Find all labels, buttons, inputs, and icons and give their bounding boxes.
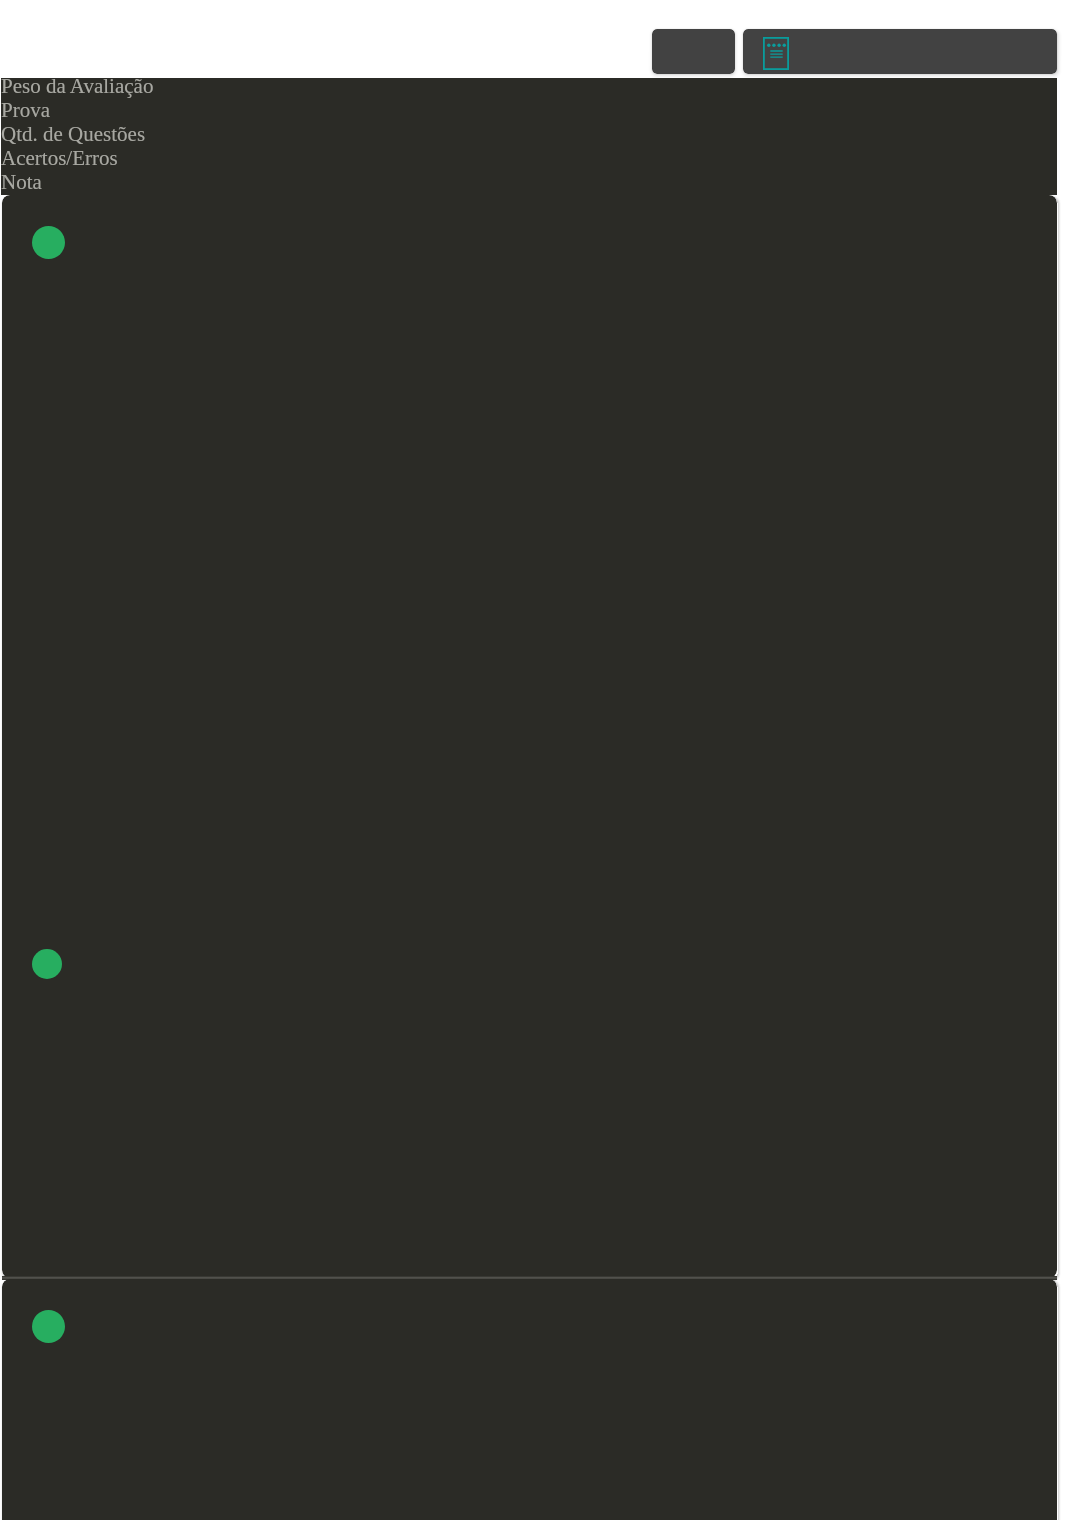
staticText: Prova [1, 98, 50, 122]
staticText: Qtd. de Questões [1, 122, 146, 146]
button[interactable] [2, 195, 1057, 1278]
button[interactable]: Abrir anotações [743, 29, 1057, 74]
staticText: Acertos/Erros [1, 146, 118, 170]
staticText: Peso da Avaliação [1, 74, 154, 98]
button[interactable] [2, 1279, 1057, 1520]
staticText: Nota [1, 170, 42, 191]
button[interactable]: Filtrar [652, 29, 735, 74]
